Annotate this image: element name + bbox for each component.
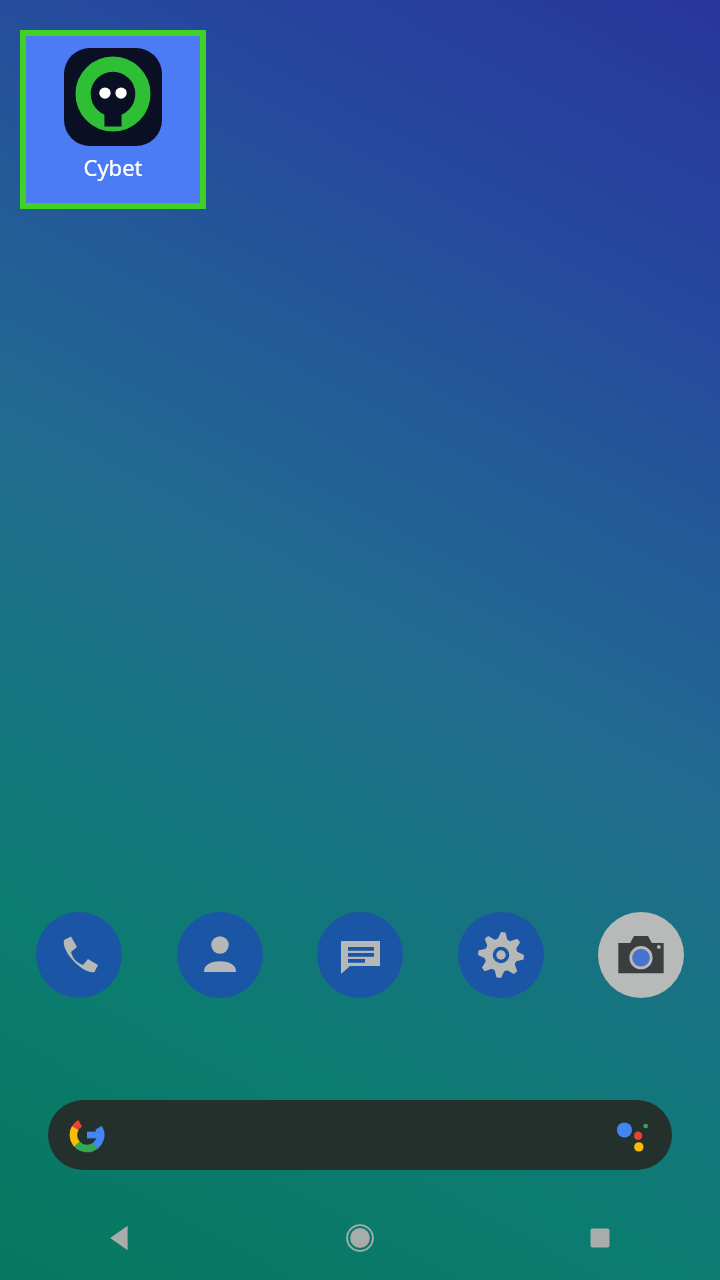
button[interactable]: Camera xyxy=(598,912,684,998)
button[interactable]: Contacts xyxy=(177,912,263,998)
button[interactable]: Recents xyxy=(480,1196,720,1280)
button[interactable]: Home xyxy=(240,1196,480,1280)
button[interactable]: Messages xyxy=(317,912,403,998)
button[interactable]: Back xyxy=(0,1196,240,1280)
button[interactable]: Cybet xyxy=(26,36,200,203)
button[interactable]: Settings xyxy=(458,912,544,998)
staticText: Cybet xyxy=(83,152,143,182)
button[interactable]: Search xyxy=(48,1100,672,1170)
button[interactable]: Phone xyxy=(36,912,122,998)
